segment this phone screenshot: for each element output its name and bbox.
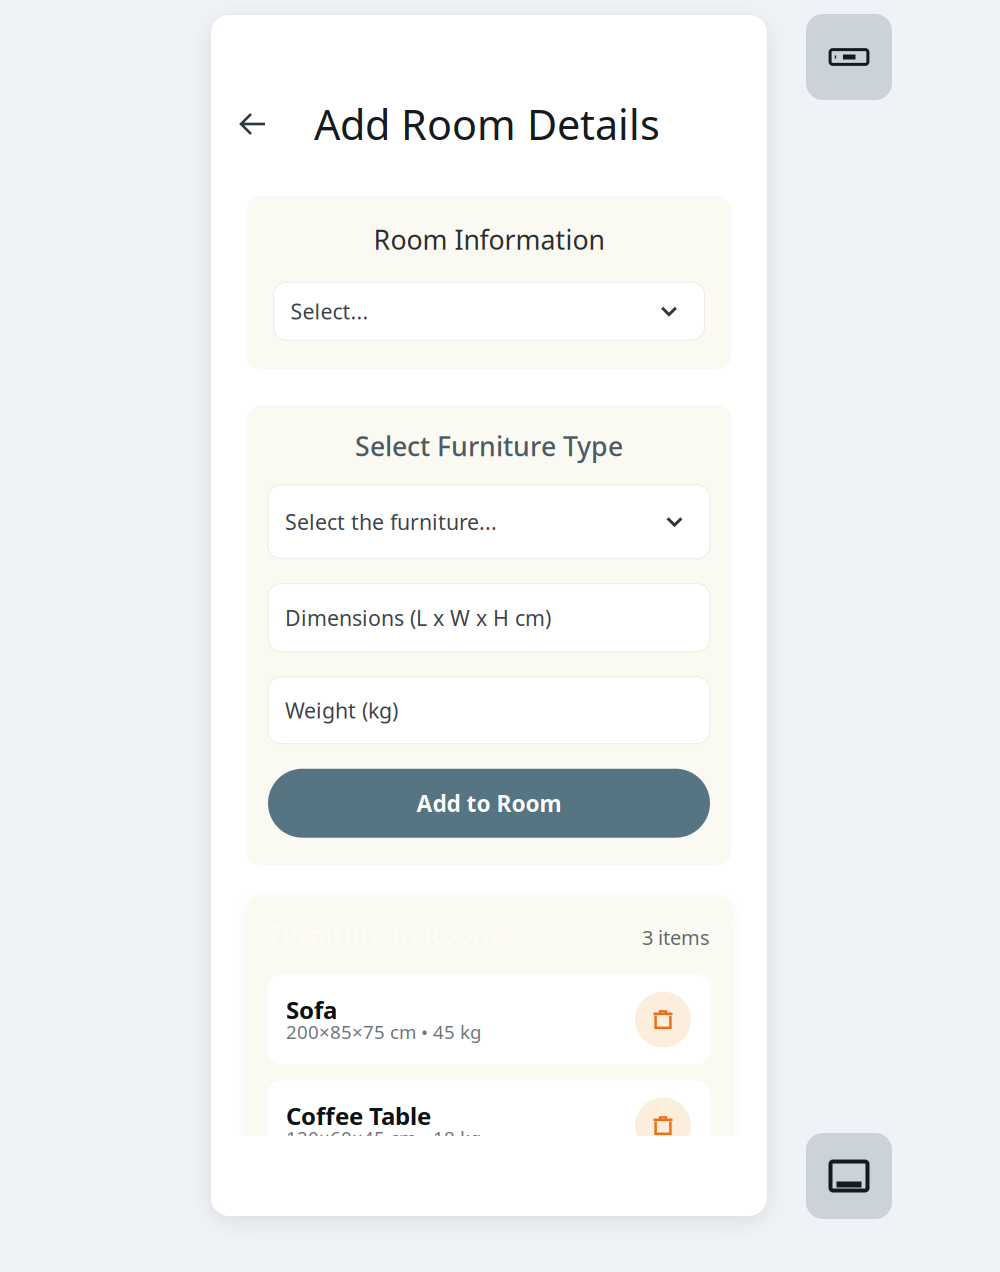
- staticText: Weight (kg): [285, 696, 398, 724]
- staticText: Coffee Table: [286, 1100, 431, 1132]
- button[interactable]: Bottom bar tool: [806, 1133, 892, 1219]
- staticText: Bookshelf: [286, 1206, 405, 1238]
- button[interactable]: Delete Bookshelf: [635, 1204, 691, 1260]
- button[interactable]: Select the furniture...: [268, 485, 710, 559]
- staticText: Sofa: [286, 994, 337, 1026]
- staticText: Add Room Details: [314, 97, 660, 151]
- button[interactable]: Text field tool: [806, 14, 892, 100]
- staticText: Room Information: [373, 222, 604, 257]
- staticText: Select Furniture Type: [355, 428, 623, 464]
- button[interactable]: Dimensions (L x W x H cm): [268, 584, 710, 652]
- button[interactable]: Delete Sofa: [635, 992, 691, 1048]
- staticText: 3 items: [642, 924, 710, 951]
- button[interactable]: Add to Room: [268, 769, 710, 838]
- staticText: Select the furniture...: [285, 507, 497, 536]
- staticText: 120×60×45 cm • 18 kg: [286, 1125, 481, 1150]
- button[interactable]: Weight (kg): [268, 677, 710, 744]
- staticText: Dimensions (L x W x H cm): [285, 603, 551, 632]
- staticText: 200×85×75 cm • 45 kg: [286, 1019, 481, 1044]
- button[interactable]: Select...: [273, 282, 704, 340]
- button[interactable]: Delete Coffee Table: [635, 1098, 691, 1154]
- staticText: Select...: [290, 297, 368, 325]
- staticText: Add to Room: [416, 788, 561, 818]
- button[interactable]: Back: [230, 101, 276, 147]
